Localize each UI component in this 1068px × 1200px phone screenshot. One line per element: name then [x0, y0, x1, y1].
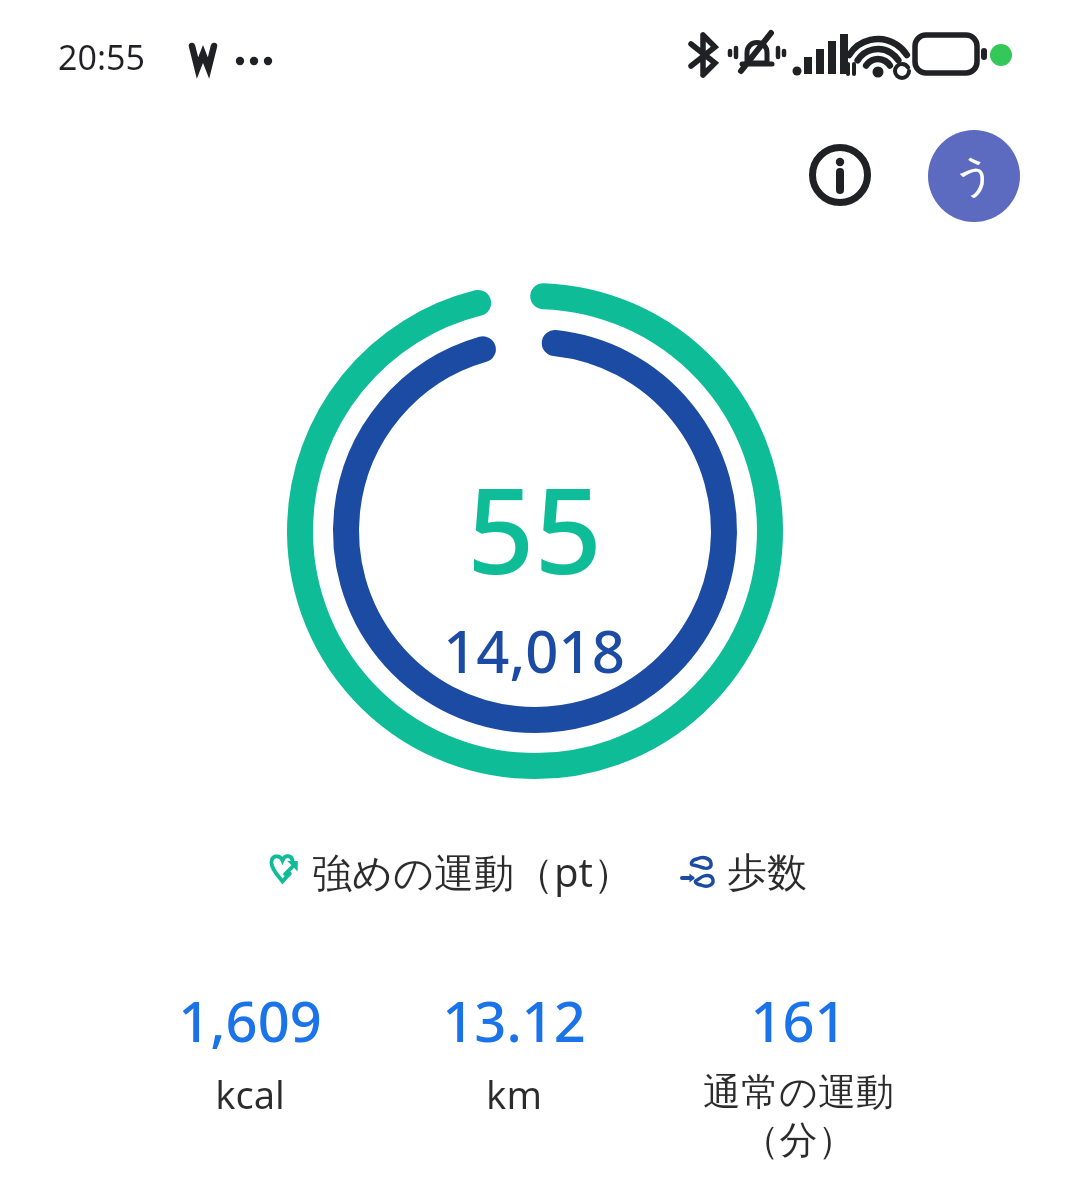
- staticText: 55: [467, 448, 602, 609]
- button[interactable]: 1,609: [150, 980, 350, 1122]
- button[interactable]: 13.12: [414, 980, 614, 1122]
- staticText: 歩数: [727, 847, 807, 897]
- staticText: う: [953, 150, 996, 203]
- button[interactable]: 歩数: [675, 841, 811, 903]
- staticText: km: [486, 1068, 542, 1120]
- staticText: 通常の運動 （分）: [703, 1068, 894, 1164]
- staticText: 13.12: [442, 982, 586, 1058]
- button[interactable]: 161: [678, 980, 918, 1166]
- button[interactable]: 情報: [795, 130, 885, 220]
- staticText: 20:55: [58, 34, 145, 80]
- staticText: kcal: [215, 1068, 285, 1120]
- staticText: 14,018: [443, 611, 625, 690]
- staticText: 強めの運動（pt）: [312, 844, 633, 899]
- button[interactable]: 強めの運動（pt）: [258, 838, 637, 905]
- staticText: 1,609: [178, 982, 322, 1058]
- staticText: 161: [750, 982, 847, 1058]
- button[interactable]: アカウント: [928, 130, 1020, 222]
